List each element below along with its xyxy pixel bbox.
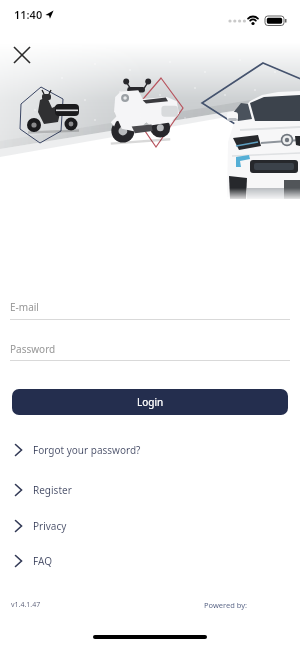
button[interactable]: Powered by: — [204, 600, 248, 610]
button[interactable] — [8, 41, 36, 69]
button[interactable]: FAQ — [0, 549, 300, 573]
staticText: Register — [33, 483, 72, 497]
button[interactable]: Login — [12, 389, 288, 415]
button[interactable]: Forgot your password? — [0, 438, 300, 462]
button[interactable]: Register — [0, 478, 300, 502]
staticText: Login — [137, 395, 164, 409]
staticText: E-mail — [10, 300, 39, 314]
staticText: FAQ — [33, 554, 52, 568]
staticText: Forgot your password? — [33, 443, 141, 457]
staticText: Privacy — [33, 519, 67, 533]
staticText: Password — [10, 342, 56, 356]
staticText: 11:40 — [14, 7, 43, 22]
button[interactable]: Privacy — [0, 514, 300, 538]
staticText: v1.4.1.47 — [11, 600, 41, 610]
